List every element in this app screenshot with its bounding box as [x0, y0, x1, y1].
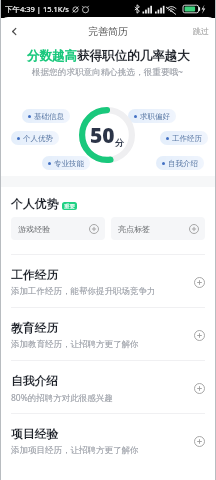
button[interactable]: 教育经历	[0, 307, 216, 360]
staticText: 个人优势	[11, 197, 59, 212]
staticText: 专业技能	[54, 159, 84, 168]
other: Add 项目经验	[194, 436, 205, 447]
staticText: 添加工作经历，能帮你提升职场竞争力	[11, 286, 156, 297]
staticText: 工作经历	[11, 268, 59, 283]
other: Add 自我介绍	[194, 383, 205, 394]
staticText: 自我介绍	[168, 159, 198, 168]
staticText: 游戏经验	[18, 224, 50, 234]
staticText: 50	[90, 121, 115, 150]
staticText: 重要	[64, 203, 76, 210]
staticText: 添加项目经历，让招聘方更了解你	[11, 445, 139, 456]
staticText: 求职偏好	[140, 112, 170, 121]
staticText: 工作经历	[172, 134, 202, 143]
button[interactable]: 自我介绍	[0, 360, 216, 413]
staticText: 项目经验	[11, 427, 59, 442]
staticText: 跳过	[193, 26, 209, 36]
button[interactable]: 游戏经验	[11, 217, 105, 240]
other: Add 工作经历	[194, 277, 205, 288]
button[interactable]: 项目经验	[0, 413, 216, 466]
staticText: 亮点标签	[118, 224, 150, 234]
staticText: 完善简历	[88, 25, 128, 38]
other: Add 教育经历	[194, 330, 205, 341]
button[interactable]: 跳过	[186, 21, 216, 41]
button[interactable]: 亮点标签	[111, 217, 205, 240]
staticText: 自我介绍	[11, 374, 59, 389]
staticText: 基础信息	[34, 112, 64, 121]
staticText: 根据您的求职意向精心挑选，很重要哦~	[32, 66, 184, 78]
staticText: 分数越高	[27, 48, 77, 64]
staticText: 分	[115, 137, 124, 148]
button[interactable]: Back	[4, 21, 25, 42]
staticText: 个人优势	[23, 134, 53, 143]
staticText: 80%的招聘方对此很感兴趣	[11, 392, 113, 404]
staticText: 下午4:39 | 15.1K/s	[5, 4, 69, 14]
staticText: 添加教育经历，让招聘方更了解你	[11, 339, 139, 350]
button[interactable]: 个人优势	[0, 186, 216, 212]
staticText: 教育经历	[11, 321, 59, 336]
staticText: 获得职位的几率越大	[77, 48, 190, 64]
button[interactable]: 工作经历	[0, 254, 216, 307]
